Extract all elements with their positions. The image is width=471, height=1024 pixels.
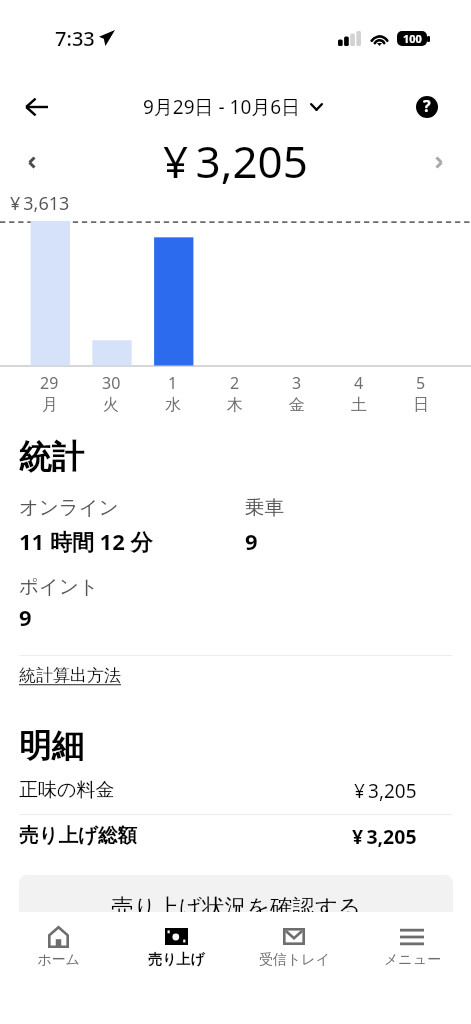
staticText: メニュー xyxy=(384,951,441,969)
staticText: ¥ 3,205 xyxy=(354,778,417,804)
staticText: 30 xyxy=(102,372,121,394)
staticText: ¥ 3,613 xyxy=(10,191,70,216)
button[interactable]: 統計算出方法 xyxy=(19,665,121,686)
staticText: 明細 xyxy=(19,726,84,767)
button[interactable]: ホーム xyxy=(0,912,117,1024)
staticText: ? xyxy=(423,96,431,117)
button[interactable]: Back xyxy=(13,84,59,130)
button[interactable]: 9月29日 - 10月6日 xyxy=(143,94,323,120)
staticText: 9 xyxy=(245,526,258,556)
staticText: 5 xyxy=(416,372,426,394)
staticText: ¥ 3,205 xyxy=(163,131,308,187)
staticText: 統計 xyxy=(19,437,84,478)
button[interactable]: Help xyxy=(405,85,449,129)
button[interactable]: 売り上げ状況を確認する xyxy=(19,875,453,949)
staticText: 金 xyxy=(289,395,305,415)
staticText: 3 xyxy=(292,372,302,394)
button[interactable]: Next week xyxy=(418,144,460,186)
staticText: 統計算出方法 xyxy=(19,665,121,686)
staticText: 正味の料金 xyxy=(19,778,115,802)
staticText: 受信トレイ xyxy=(259,951,330,969)
staticText: 7:33 xyxy=(55,25,95,52)
staticText: 日 xyxy=(413,395,429,415)
staticText: ¥ 3,205 xyxy=(352,823,417,850)
staticText: 火 xyxy=(103,395,119,415)
staticText: オンライン xyxy=(19,495,119,520)
staticText: 売り上げ xyxy=(148,951,205,969)
staticText: 乗車 xyxy=(245,495,284,520)
staticText: 月 xyxy=(42,395,58,415)
staticText: 木 xyxy=(227,395,243,415)
staticText: 土 xyxy=(351,395,367,415)
button[interactable]: メニュー xyxy=(353,912,471,1024)
button[interactable]: 受信トレイ xyxy=(235,912,353,1024)
staticText: 2 xyxy=(230,372,240,394)
staticText: 水 xyxy=(165,395,181,415)
staticText: 9 xyxy=(19,602,32,632)
staticText: 売り上げ総額 xyxy=(19,823,137,848)
staticText: ホーム xyxy=(37,951,80,969)
staticText: 売り上げ状況を確認する xyxy=(111,893,362,921)
staticText: 29 xyxy=(40,372,59,394)
staticText: 100 xyxy=(403,31,422,46)
staticText: 9月29日 - 10月6日 xyxy=(143,94,301,120)
staticText: ポイント xyxy=(19,574,99,599)
staticText: 1 xyxy=(168,372,178,394)
button[interactable]: Previous week xyxy=(11,144,53,186)
staticText: 11 時間 12 分 xyxy=(19,526,153,556)
staticText: 4 xyxy=(354,372,364,394)
button[interactable]: 売り上げ xyxy=(117,912,235,1024)
